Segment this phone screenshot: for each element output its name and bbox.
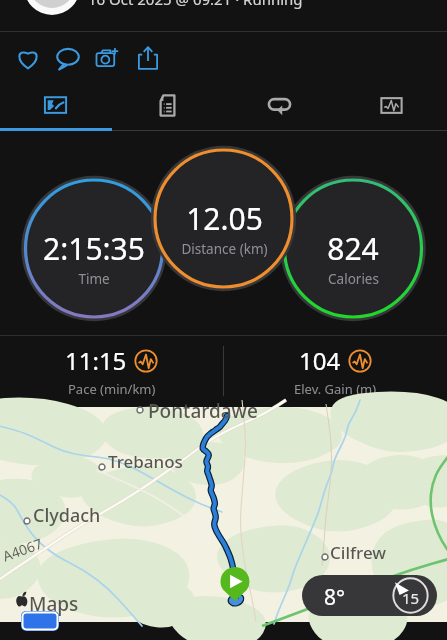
- button[interactable]: Details: [111, 84, 223, 131]
- staticText: 16 Oct 2025 @ 09:21 · Running: [88, 0, 303, 9]
- button[interactable]: Map: [0, 84, 111, 131]
- staticText: Distance (km): [181, 240, 268, 258]
- staticText: Pace (min/km): [68, 380, 156, 398]
- button[interactable]: Like: [8, 38, 48, 78]
- staticText: A4067: [0, 534, 45, 565]
- button[interactable]: Share: [128, 38, 168, 78]
- staticText: Maps: [29, 591, 79, 617]
- button[interactable]: 104: [224, 335, 447, 407]
- staticText: 15: [402, 588, 420, 608]
- staticText: Pontardawe: [148, 398, 258, 424]
- staticText: 2:15:35: [43, 228, 145, 269]
- button[interactable]: Route map: [0, 407, 447, 622]
- staticText: 104: [299, 344, 341, 377]
- staticText: Clydach: [33, 503, 101, 528]
- button[interactable]: Comment: [48, 38, 88, 78]
- staticText: 824: [327, 228, 379, 269]
- button[interactable]: Charts: [335, 84, 447, 131]
- staticText: Time: [78, 270, 110, 288]
- button[interactable]: Add photo: [88, 38, 128, 78]
- staticText: Cilfrew: [330, 541, 387, 564]
- button[interactable]: Weather 8 degrees, wind 15: [302, 575, 437, 616]
- staticText: 11:15: [65, 344, 127, 377]
- staticText: Trebanos: [108, 450, 183, 473]
- staticText: 8°: [324, 583, 345, 612]
- staticText: Calories: [328, 270, 379, 288]
- staticText: 12.05: [186, 198, 263, 239]
- button[interactable]: 11:15: [0, 335, 223, 407]
- button[interactable]: Route: [223, 84, 335, 131]
- staticText: Elev. Gain (m): [294, 380, 377, 398]
